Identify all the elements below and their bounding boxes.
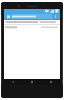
button[interactable]: Back bbox=[4, 79, 22, 85]
button[interactable] bbox=[4, 25, 60, 30]
button[interactable]: Recent apps bbox=[41, 79, 60, 85]
button[interactable]: Home bbox=[22, 79, 41, 85]
button[interactable] bbox=[11, 14, 52, 19]
button[interactable] bbox=[4, 20, 60, 25]
button[interactable]: Navigate up bbox=[6, 14, 11, 19]
button[interactable]: More options bbox=[53, 14, 58, 19]
